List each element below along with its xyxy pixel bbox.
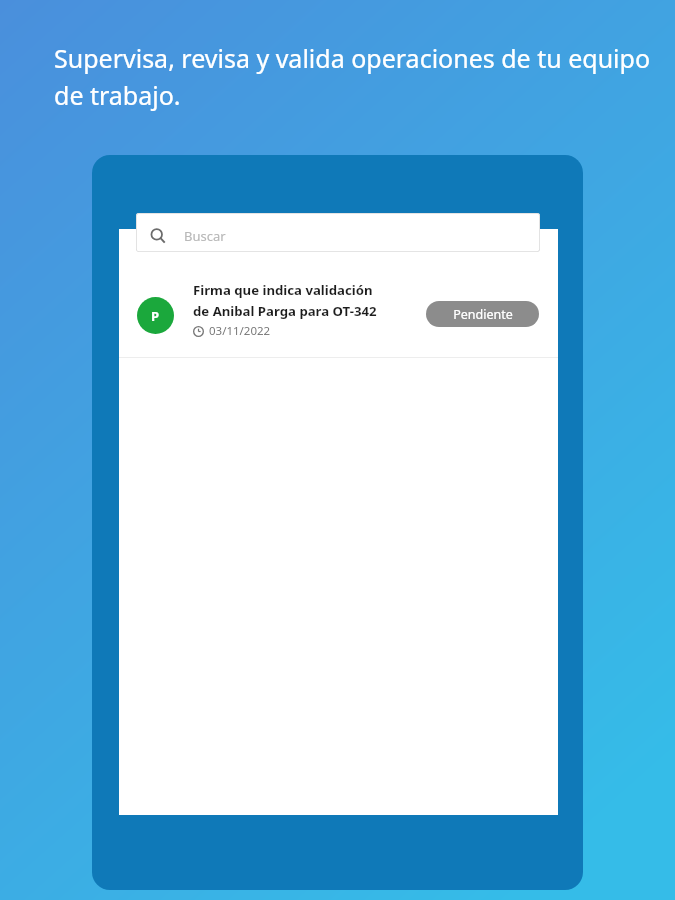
other: Buscar (136, 213, 540, 252)
staticText: Supervisa, revisa y valida operaciones d… (54, 41, 664, 112)
other: Buscar (150, 228, 166, 244)
button[interactable]: Pendiente (426, 301, 539, 327)
staticText: Buscar (184, 227, 226, 245)
button[interactable]: Buscar (136, 213, 540, 252)
staticText: P (151, 307, 160, 325)
button[interactable]: P (119, 268, 558, 357)
staticText: 03/11/2022 (209, 323, 271, 339)
staticText: Firma que indica validación de Anibal Pa… (193, 281, 433, 320)
staticText: Pendiente (453, 306, 513, 323)
